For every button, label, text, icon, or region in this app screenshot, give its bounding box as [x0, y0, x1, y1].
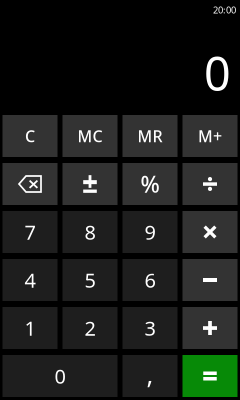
button[interactable]: 3: [122, 307, 177, 349]
button[interactable]: 7: [2, 211, 57, 253]
button[interactable]: 9: [122, 211, 177, 253]
staticText: 9: [144, 219, 155, 245]
button[interactable]: 1: [2, 307, 57, 349]
button[interactable]: 5: [62, 259, 117, 301]
button[interactable]: MR: [122, 115, 177, 157]
button[interactable]: 0: [2, 355, 117, 397]
button[interactable]: %: [122, 163, 177, 205]
button[interactable]: Divide: [182, 163, 237, 205]
button[interactable]: 6: [122, 259, 177, 301]
staticText: 6: [144, 267, 155, 293]
button[interactable]: MC: [62, 115, 117, 157]
staticText: M+: [198, 125, 222, 147]
staticText: 20:00: [213, 4, 236, 16]
button[interactable]: Equals: [182, 355, 237, 397]
staticText: 5: [84, 267, 95, 293]
staticText: 8: [84, 219, 95, 245]
button[interactable]: Delete: [2, 163, 57, 205]
button[interactable]: C: [2, 115, 57, 157]
staticText: 1: [24, 315, 35, 341]
staticText: MC: [77, 125, 102, 147]
staticText: 0: [204, 42, 231, 104]
staticText: MR: [137, 125, 162, 147]
button[interactable]: Plus: [182, 307, 237, 349]
staticText: 0: [54, 363, 65, 389]
button[interactable]: Minus: [182, 259, 237, 301]
staticText: 4: [24, 267, 35, 293]
button[interactable]: ,: [122, 355, 177, 397]
button[interactable]: M+: [182, 115, 237, 157]
staticText: %: [140, 169, 159, 199]
button[interactable]: 8: [62, 211, 117, 253]
button[interactable]: Plus minus: [62, 163, 117, 205]
staticText: 3: [144, 315, 155, 341]
button[interactable]: 4: [2, 259, 57, 301]
staticText: ,: [146, 358, 153, 391]
button[interactable]: 2: [62, 307, 117, 349]
staticText: C: [25, 125, 35, 147]
staticText: 7: [24, 219, 35, 245]
button[interactable]: Multiply: [182, 211, 237, 253]
staticText: 2: [84, 315, 95, 341]
